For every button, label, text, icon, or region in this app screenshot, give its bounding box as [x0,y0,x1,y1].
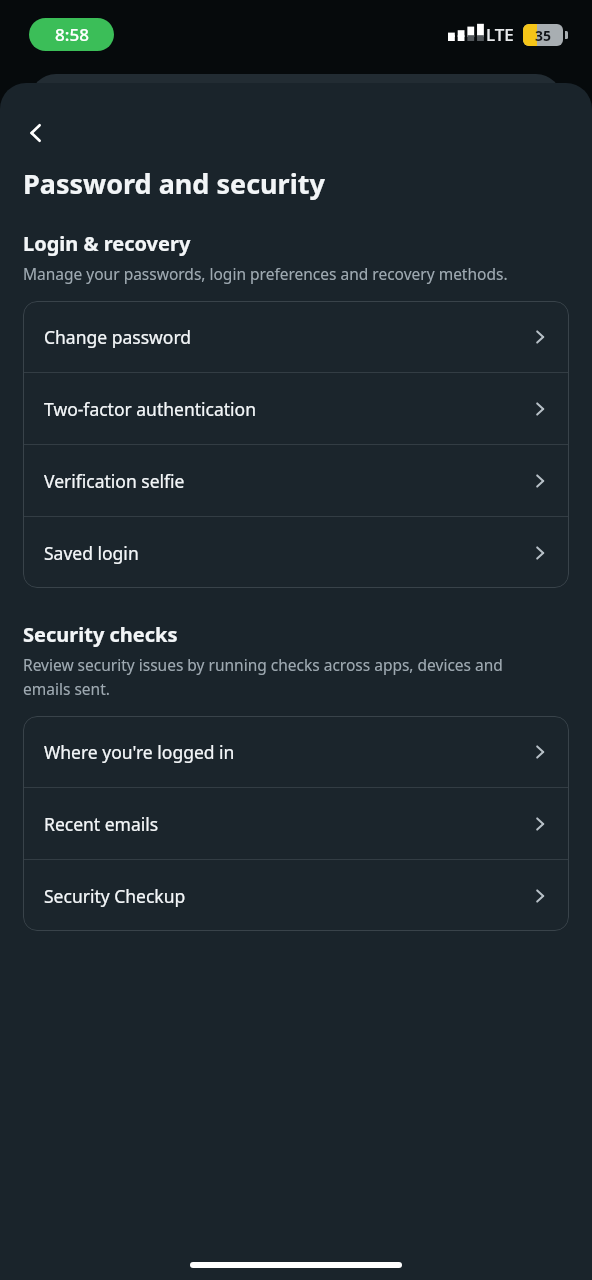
button[interactable]: Two-factor authentication [23,373,569,444]
staticText: 35 [535,26,552,45]
button[interactable]: Change password [23,301,569,372]
staticText: Two-factor authentication [44,397,530,421]
button[interactable]: Where you're logged in [23,716,569,787]
staticText: Recent emails [44,812,530,836]
button[interactable]: Back [10,107,62,159]
staticText: Security Checkup [44,884,530,908]
staticText: Security checks [23,621,178,648]
staticText: Password and security [23,165,325,202]
staticText: Verification selfie [44,469,530,493]
button[interactable]: Saved login [23,517,569,588]
staticText: Login & recovery [23,230,191,257]
staticText: Where you're logged in [44,740,530,764]
staticText: Saved login [44,541,530,565]
staticText: Change password [44,325,530,349]
button[interactable]: Verification selfie [23,445,569,516]
staticText: 8:58 [55,23,89,46]
button[interactable]: Security Checkup [23,860,569,931]
staticText: LTE [486,23,514,46]
staticText: Review security issues by running checks… [23,654,552,699]
button[interactable]: Recent emails [23,788,569,859]
staticText: Manage your passwords, login preferences… [23,263,508,284]
